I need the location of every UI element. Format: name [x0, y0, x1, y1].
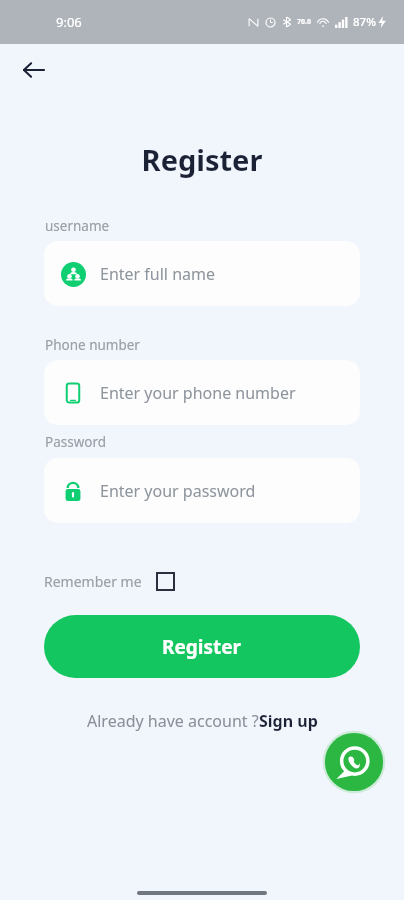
staticText: Enter full name	[100, 263, 216, 285]
staticText: Password	[45, 433, 107, 451]
staticText: 70.0	[297, 17, 311, 27]
staticText: Enter your phone number	[100, 382, 296, 404]
staticText: Remember me	[44, 572, 142, 591]
staticText: Register	[0, 140, 404, 179]
staticText: Already have account ?	[87, 710, 259, 732]
button[interactable]: Enter your phone number	[44, 360, 360, 425]
staticText: 9:06	[56, 13, 82, 31]
button[interactable]: Remember me	[44, 572, 175, 591]
button[interactable]: Back	[14, 50, 54, 90]
staticText: Sign up	[259, 710, 318, 732]
button[interactable]: Enter your password	[44, 458, 360, 523]
staticText: Phone number	[45, 336, 140, 354]
button[interactable]: Chat on WhatsApp	[322, 730, 386, 794]
staticText: 87%	[353, 14, 376, 30]
button[interactable]: Enter full name	[44, 241, 360, 306]
staticText: username	[45, 217, 110, 235]
button[interactable]: Sign up	[259, 710, 318, 732]
staticText: Register	[162, 634, 242, 660]
button[interactable]: Register	[44, 615, 360, 678]
staticText: Enter your password	[100, 480, 256, 502]
